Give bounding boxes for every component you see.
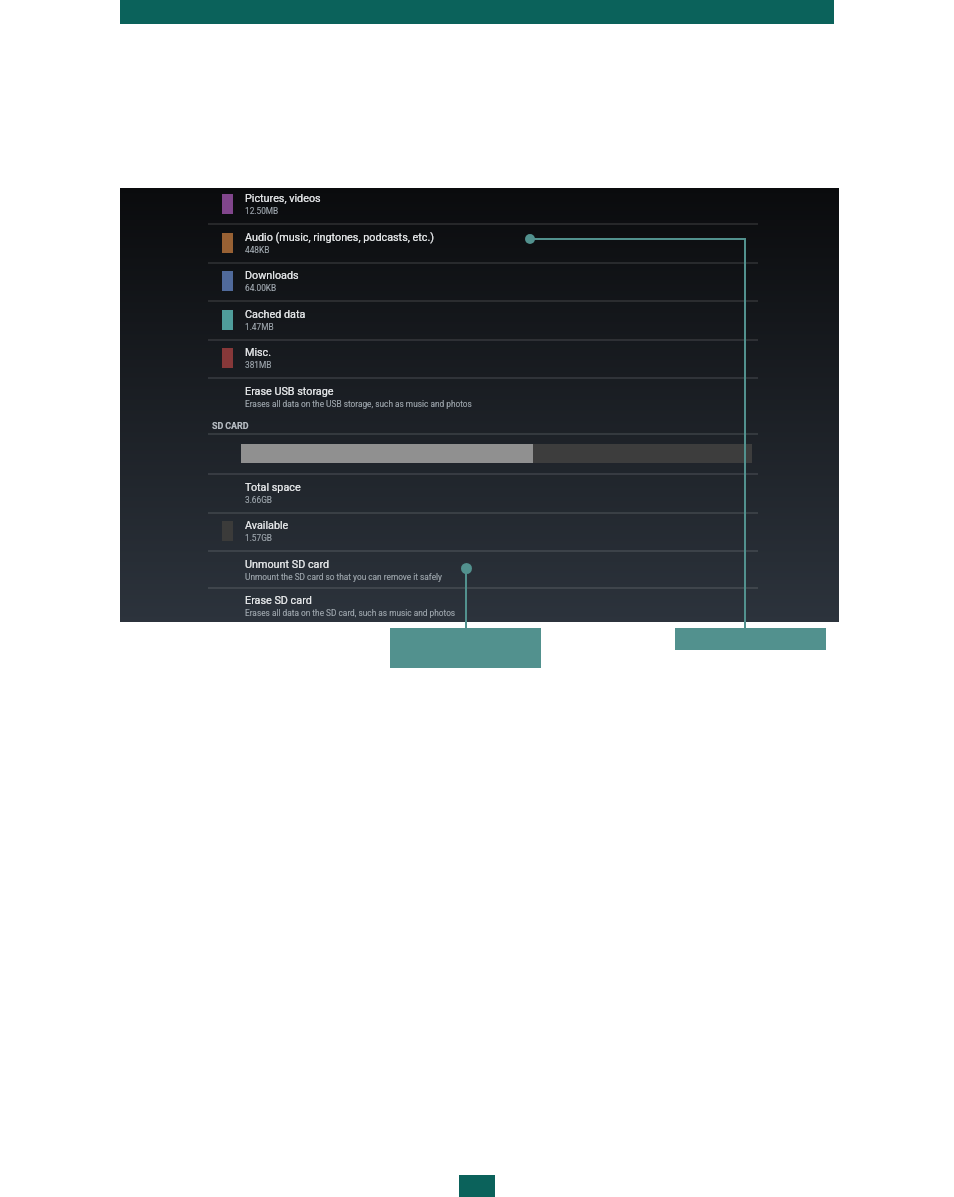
staticText: Erase USB storage [245,385,334,398]
button[interactable]: Erase SD card [208,587,758,622]
staticText: Cached data [245,308,306,321]
button[interactable]: Misc. [208,339,758,378]
staticText: Audio (music, ringtones, podcasts, etc.) [245,231,435,244]
staticText: Erases all data on the SD card, such as … [245,608,456,618]
staticText: Pictures, videos [245,192,321,205]
staticText: Misc. [245,346,272,359]
staticText: 448KB [245,245,270,255]
staticText: Unmount the SD card so that you can remo… [245,572,442,582]
staticText: 1.47MB [245,322,274,332]
staticText: Downloads [245,269,299,282]
staticText: Unmount SD card [245,558,330,571]
button[interactable]: Audio (music, ringtones, podcasts, etc.) [208,224,758,263]
staticText: Available [245,519,289,532]
staticText: 12.50MB [245,206,279,216]
staticText: Erase SD card [245,594,312,607]
button[interactable]: Pictures, videos [208,188,758,224]
staticText: 3.66GB [245,495,272,505]
button[interactable]: Unmount SD card [208,551,758,588]
staticText: Erases all data on the USB storage, such… [245,399,472,409]
button[interactable]: Cached data [208,301,758,340]
staticText: 381MB [245,360,272,370]
staticText: 1.57GB [245,533,272,543]
staticText: SD CARD [212,421,249,432]
staticText: Total space [245,481,301,494]
button[interactable]: Total space [208,474,758,513]
button[interactable]: Available [208,512,758,551]
staticText: 64.00KB [245,283,277,293]
button[interactable]: Downloads [208,262,758,301]
button[interactable]: Erase USB storage [208,378,758,423]
